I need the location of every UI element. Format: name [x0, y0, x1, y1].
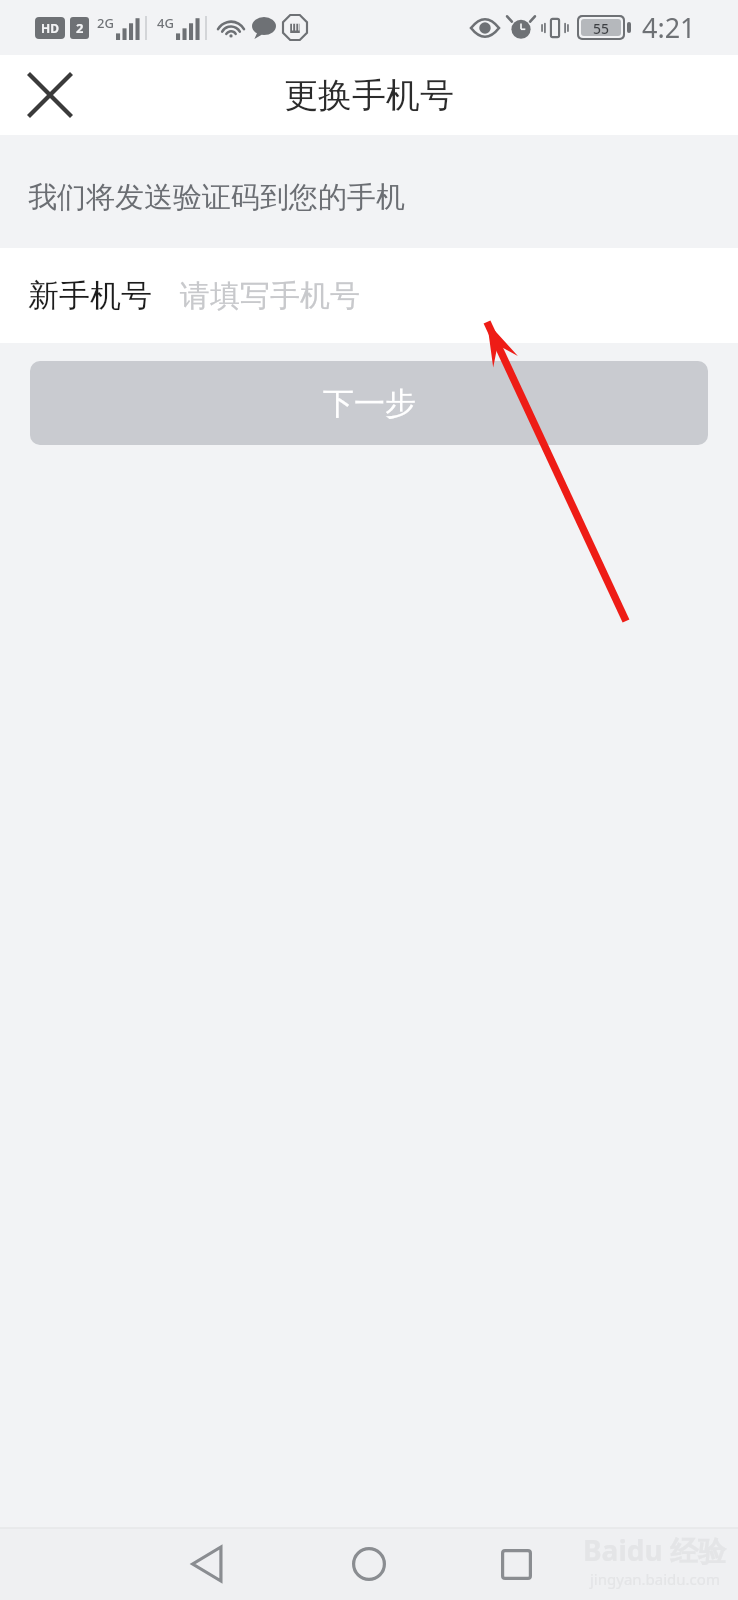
- staticText: 2: [76, 19, 84, 37]
- staticText: 4:21: [642, 9, 696, 46]
- staticText: 2G: [97, 14, 114, 32]
- staticText: jingyan.baidu.com: [590, 1569, 720, 1589]
- button[interactable]: Back: [172, 1528, 244, 1600]
- staticText: 下一步: [323, 384, 416, 423]
- staticText: 更换手机号: [284, 74, 454, 117]
- staticText: 我们将发送验证码到您的手机: [28, 179, 405, 216]
- button[interactable]: Close: [14, 59, 86, 131]
- button[interactable]: Recents: [480, 1528, 552, 1600]
- button[interactable]: 下一步: [30, 361, 708, 445]
- staticText: 新手机号: [28, 276, 152, 315]
- staticText: 4G: [157, 14, 174, 32]
- button[interactable]: 新手机号: [0, 248, 738, 343]
- button[interactable]: Home: [333, 1528, 405, 1600]
- staticText: 请填写手机号: [180, 277, 360, 315]
- staticText: 55: [593, 19, 610, 36]
- staticText: Baidu 经验: [583, 1531, 726, 1569]
- staticText: HD: [41, 20, 59, 36]
